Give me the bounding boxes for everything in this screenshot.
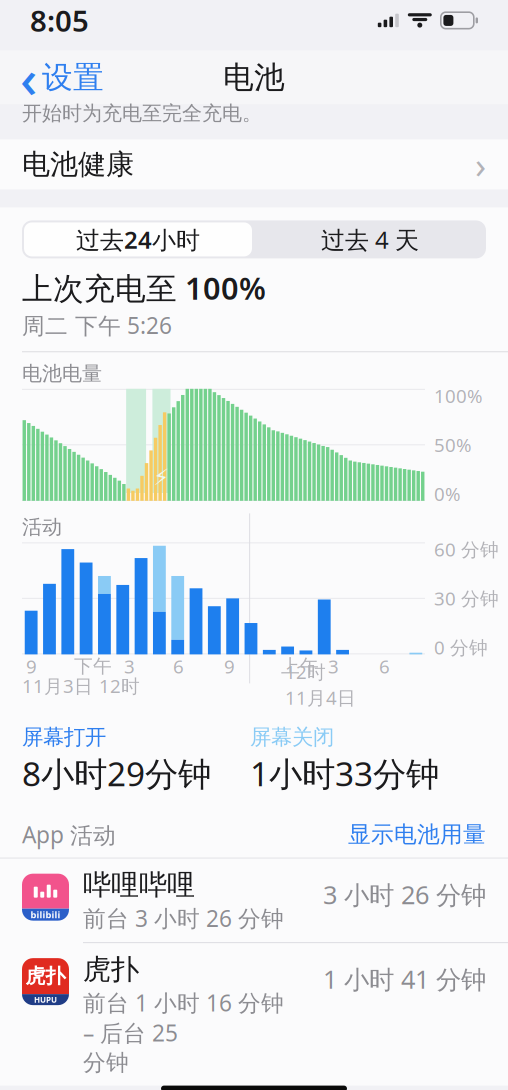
staticText: 12时 (99, 673, 140, 698)
staticText: 前台 3 小时 26 分钟 (83, 903, 284, 933)
button[interactable]: 虎扑 (0, 943, 508, 1085)
staticText: 6 (379, 654, 390, 679)
staticText: 屏幕打开 (22, 724, 106, 750)
staticText: 前台 1 小时 16 分钟 – 后台 25 (83, 987, 284, 1048)
staticText: 11月3日 (22, 673, 93, 698)
staticText: 1 小时 41 分钟 (323, 962, 486, 996)
staticText: 8:05 (30, 1, 89, 40)
staticText: bilibili (30, 908, 60, 921)
staticText: 1小时33分钟 (250, 751, 439, 795)
staticText: 6 (173, 654, 184, 679)
staticText: 电池 (223, 59, 285, 96)
button[interactable]: ‹ (6, 36, 118, 119)
staticText: 活动 (22, 515, 62, 539)
button[interactable]: 过去24小时 (22, 220, 254, 258)
staticText: 过去24小时 (76, 223, 200, 255)
staticText: 8小时29分钟 (22, 751, 211, 795)
staticText: 0 分钟 (434, 635, 488, 660)
staticText: 9 (26, 654, 37, 679)
staticText: 12时 (285, 659, 326, 684)
button[interactable]: 过去 4 天 (254, 222, 486, 256)
staticText: 3 (328, 654, 339, 679)
staticText: 下午 (74, 655, 112, 678)
staticText: 虎扑 (25, 964, 65, 988)
button[interactable]: 电池健康 (0, 139, 508, 189)
staticText: 电池电量 (22, 361, 102, 386)
staticText: ⚡︎ (153, 464, 169, 490)
staticText: 30 分钟 (434, 586, 499, 611)
staticText: 显示电池用量 (348, 821, 486, 848)
staticText: 虎扑 (83, 952, 139, 986)
staticText: 哔哩哔哩 (83, 868, 195, 902)
staticText: 3 (124, 654, 135, 679)
staticText: › (475, 140, 486, 188)
staticText: 9 (224, 654, 235, 679)
staticText: 3 小时 26 分钟 (323, 878, 486, 911)
staticText: ‹ (20, 42, 37, 113)
staticText: 屏幕关闭 (250, 724, 334, 750)
staticText: 11月4日 (285, 685, 356, 710)
staticText: App 活动 (22, 819, 116, 850)
staticText: 分钟 (83, 1049, 129, 1076)
staticText: 设置 (42, 59, 104, 96)
staticText: 过去 4 天 (321, 223, 419, 255)
staticText: 开始时为充电至完全充电。 (22, 101, 262, 126)
staticText: 电池健康 (22, 147, 134, 182)
staticText: 100% (434, 383, 483, 408)
staticText: 60 分钟 (434, 537, 499, 562)
button[interactable]: bilibili (0, 859, 508, 943)
staticText: 周二 下午 5:26 (22, 310, 172, 340)
staticText: 上午 (281, 655, 319, 678)
staticText: 上次充电至 100% (22, 267, 266, 308)
staticText: 50% (434, 432, 472, 457)
staticText: 0% (434, 481, 461, 506)
button[interactable]: 显示电池用量 (348, 821, 486, 848)
staticText: HUPU (34, 994, 57, 1005)
